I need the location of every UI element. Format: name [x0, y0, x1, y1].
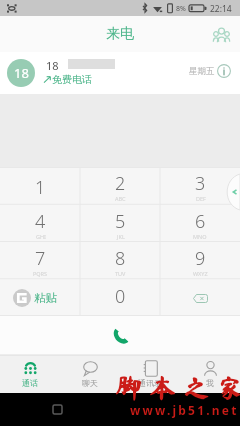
staticText: WXYZ: [193, 270, 208, 277]
staticText: 1: [35, 175, 46, 200]
staticText: MNO: [193, 233, 207, 240]
button[interactable]: 粘贴: [0, 279, 80, 316]
staticText: 0: [115, 284, 126, 309]
button[interactable]: 1: [0, 167, 80, 205]
staticText: DEF: [196, 195, 206, 202]
staticText: 2: [115, 171, 126, 196]
staticText: 6: [195, 209, 206, 234]
staticText: 聊天: [82, 378, 98, 388]
staticText: 通话: [22, 378, 38, 388]
button[interactable]: 9: [160, 242, 240, 279]
staticText: 4: [35, 209, 46, 234]
staticText: 9: [195, 246, 206, 271]
button[interactable]: Call details: [214, 61, 234, 81]
button[interactable]: 18: [0, 52, 240, 94]
staticText: JKL: [117, 233, 125, 240]
button[interactable]: Delete: [160, 279, 240, 316]
staticText: 18: [46, 58, 59, 73]
staticText: 18: [14, 64, 29, 82]
button[interactable]: Contacts: [208, 21, 234, 47]
staticText: 7: [35, 246, 46, 271]
staticText: 5: [115, 209, 126, 234]
staticText: 免费电话: [52, 73, 92, 86]
button[interactable]: 通讯录: [120, 355, 180, 393]
button[interactable]: 6: [160, 205, 240, 242]
staticText: 我: [206, 378, 214, 388]
staticText: 3: [195, 171, 206, 196]
button[interactable]: 7: [0, 242, 80, 279]
button[interactable]: Call: [0, 316, 240, 355]
staticText: www.jb51.net: [130, 402, 239, 418]
staticText: 星期五: [189, 66, 215, 77]
button[interactable]: 8: [80, 242, 160, 279]
button[interactable]: 我: [180, 355, 240, 393]
staticText: TUV: [115, 270, 126, 277]
button[interactable]: 3: [160, 167, 240, 205]
button[interactable]: 4: [0, 205, 80, 242]
button[interactable]: 2: [80, 167, 160, 205]
staticText: GHI: [36, 233, 46, 240]
staticText: 粘贴: [34, 291, 57, 305]
button[interactable]: 0: [80, 279, 160, 316]
staticText: PQRS: [33, 270, 48, 277]
button[interactable]: 通话: [0, 355, 60, 393]
staticText: 来电: [106, 25, 134, 43]
staticText: ABC: [115, 195, 126, 202]
button[interactable]: 聊天: [60, 355, 120, 393]
staticText: 22:14: [210, 3, 232, 15]
button[interactable]: 5: [80, 205, 160, 242]
staticText: 通讯录: [138, 378, 162, 388]
staticText: 脚本之家: [115, 375, 240, 401]
staticText: 8: [115, 246, 126, 271]
staticText: 8%: [176, 4, 186, 14]
